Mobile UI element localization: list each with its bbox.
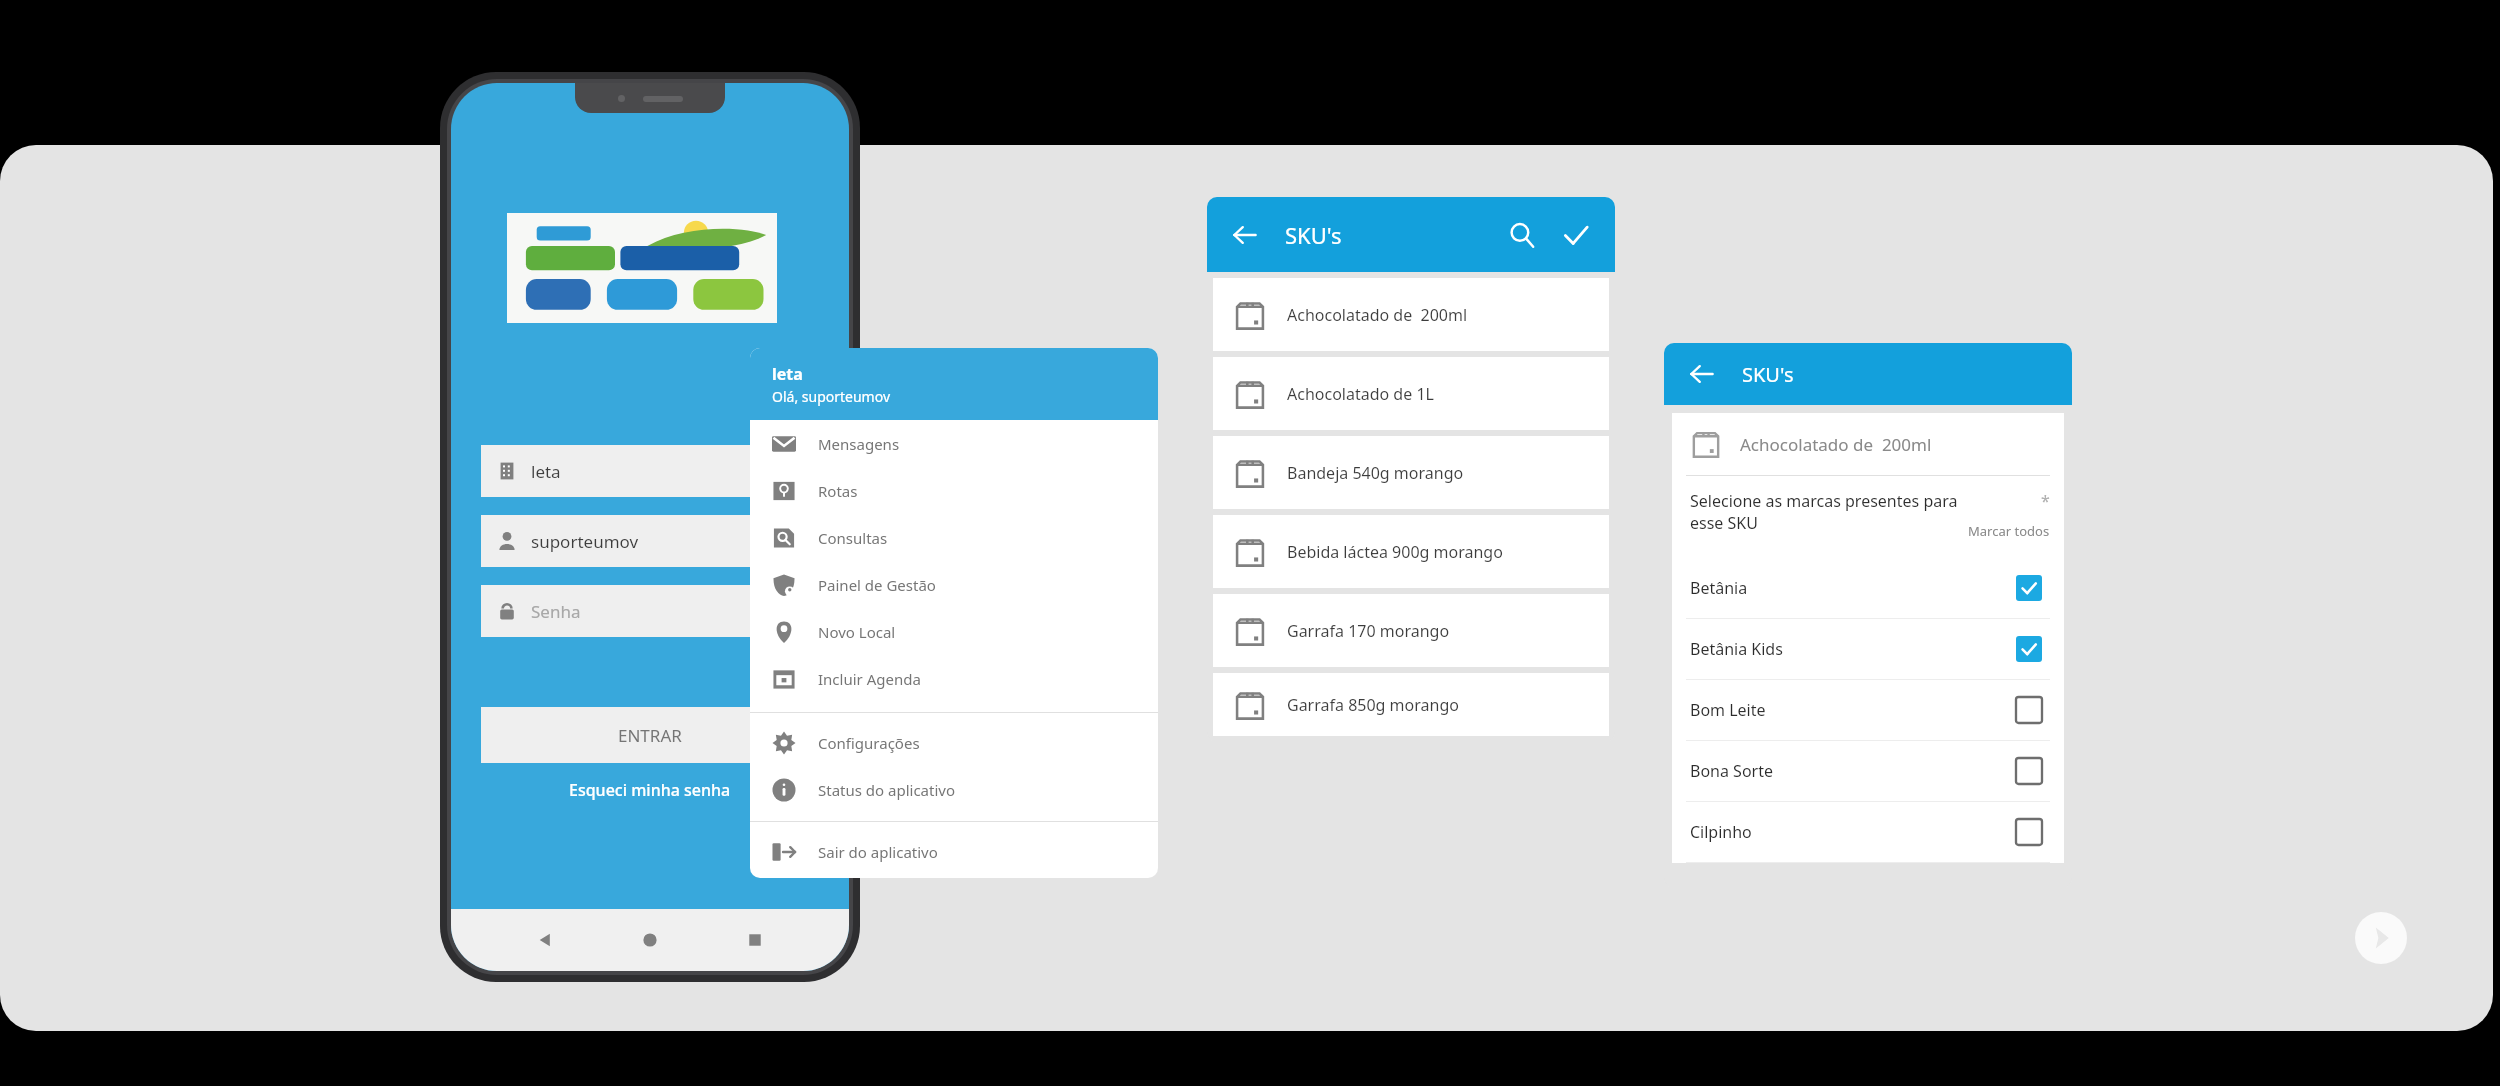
staticText: Configurações <box>818 733 920 753</box>
staticText: suporteumov <box>531 530 639 553</box>
staticText: Achocolatado de 200ml <box>1287 304 1468 326</box>
button[interactable]: Achocolatado de 200ml <box>1213 278 1609 351</box>
button[interactable]: Rotas <box>750 467 1158 514</box>
button[interactable]: Status do aplicativo <box>750 766 1158 813</box>
staticText: Betânia Kids <box>1690 638 2016 660</box>
button[interactable]: Bom Leite <box>1672 680 2064 740</box>
button[interactable]: Consultas <box>750 514 1158 561</box>
button[interactable]: Betânia Kids <box>1672 619 2064 679</box>
staticText: Bandeja 540g morango <box>1287 462 1464 484</box>
button[interactable]: Garrafa 170 morango <box>1213 594 1609 667</box>
staticText: Achocolatado de 1L <box>1287 383 1434 405</box>
button[interactable]: Next <box>2355 912 2407 964</box>
staticText: Rotas <box>818 481 858 501</box>
staticText: Consultas <box>818 528 888 548</box>
button[interactable]: Incluir Agenda <box>750 655 1158 702</box>
button[interactable]: Back <box>1686 358 1718 390</box>
staticText: Bom Leite <box>1690 699 2016 721</box>
button[interactable]: Mensagens <box>750 420 1158 467</box>
button[interactable]: Senha <box>481 585 819 637</box>
staticText: Novo Local <box>818 622 896 642</box>
button[interactable]: Bebida láctea 900g morango <box>1213 515 1609 588</box>
button[interactable]: Achocolatado de 1L <box>1213 357 1609 430</box>
staticText: Olá, suporteumov <box>772 387 891 406</box>
button[interactable]: leta <box>481 445 819 497</box>
staticText: ENTRAR <box>618 724 682 747</box>
button[interactable]: Home <box>639 929 661 951</box>
staticText: Senha <box>531 600 581 623</box>
button[interactable]: Achocolatado de 200ml <box>1672 413 2064 475</box>
button[interactable]: Bandeja 540g morango <box>1213 436 1609 509</box>
staticText: Bona Sorte <box>1690 760 2016 782</box>
staticText: Sair do aplicativo <box>818 842 938 862</box>
button[interactable]: Confirm <box>1559 218 1593 252</box>
staticText: Incluir Agenda <box>818 669 921 689</box>
button[interactable]: Sair do aplicativo <box>750 828 1158 875</box>
button[interactable]: Garrafa 850g morango <box>1213 673 1609 736</box>
staticText: * <box>2041 490 2050 512</box>
staticText: SKU's <box>1742 361 1794 388</box>
button[interactable]: Recents <box>744 929 766 951</box>
button[interactable]: Search <box>1505 218 1539 252</box>
button[interactable]: suporteumov <box>481 515 819 567</box>
button[interactable]: Novo Local <box>750 608 1158 655</box>
staticText: Status do aplicativo <box>818 780 956 800</box>
button[interactable]: Configurações <box>750 719 1158 766</box>
button[interactable]: Back <box>534 929 556 951</box>
staticText: SKU's <box>1285 220 1342 250</box>
staticText: Garrafa 850g morango <box>1287 694 1459 716</box>
staticText: Cilpinho <box>1690 821 2016 843</box>
button[interactable]: ENTRAR <box>481 707 819 763</box>
button[interactable]: Cilpinho <box>1672 802 2064 862</box>
staticText: Esqueci minha senha <box>569 779 731 801</box>
button[interactable]: Betânia <box>1672 558 2064 618</box>
button[interactable]: Painel de Gestão <box>750 561 1158 608</box>
button[interactable]: Bona Sorte <box>1672 741 2064 801</box>
staticText: leta <box>772 363 803 385</box>
staticText: Mensagens <box>818 434 900 454</box>
staticText: Garrafa 170 morango <box>1287 620 1450 642</box>
staticText: Painel de Gestão <box>818 575 936 595</box>
staticText: Bebida láctea 900g morango <box>1287 541 1503 563</box>
staticText: Betânia <box>1690 577 2016 599</box>
button[interactable]: Esqueci minha senha <box>451 779 849 801</box>
staticText: Selecione as marcas presentes para esse … <box>1690 490 1968 534</box>
staticText: Achocolatado de 200ml <box>1740 433 1932 456</box>
button[interactable]: Back <box>1229 219 1261 251</box>
button[interactable]: Marcar todos <box>1968 522 2050 540</box>
staticText: leta <box>531 460 561 483</box>
